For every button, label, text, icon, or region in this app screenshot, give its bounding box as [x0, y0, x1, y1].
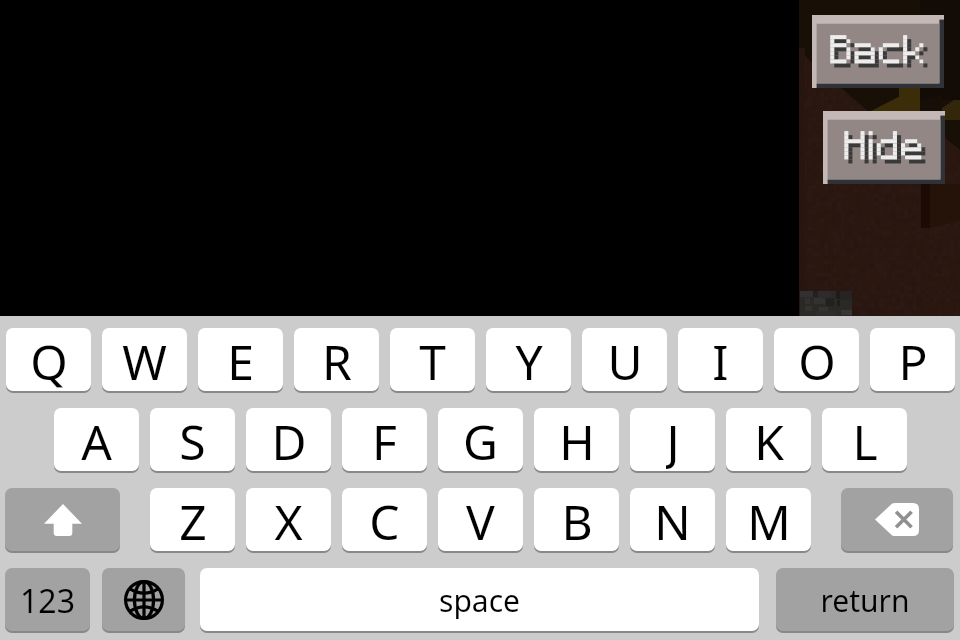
staticText: J	[666, 409, 680, 471]
staticText: P	[898, 329, 928, 391]
staticText: G	[463, 409, 498, 471]
staticText: K	[754, 409, 784, 471]
staticText: Q	[30, 329, 68, 391]
button[interactable]: O	[774, 328, 859, 391]
staticText: Z	[179, 489, 207, 551]
staticText: N	[654, 489, 691, 551]
button[interactable]: H	[534, 408, 619, 471]
button[interactable]: L	[822, 408, 907, 471]
button[interactable]: N	[630, 488, 715, 551]
button[interactable]	[823, 111, 945, 184]
staticText: S	[179, 409, 206, 471]
button[interactable]: I	[678, 328, 763, 391]
staticText: H	[559, 409, 595, 471]
button[interactable]: return	[776, 568, 954, 631]
staticText: space	[439, 580, 520, 621]
button[interactable]: K	[726, 408, 811, 471]
staticText: O	[798, 329, 836, 391]
staticText: W	[122, 329, 167, 391]
button[interactable]: B	[534, 488, 619, 551]
button[interactable]: Shift	[5, 488, 120, 551]
staticText: R	[322, 329, 352, 391]
button[interactable]: S	[150, 408, 235, 471]
button[interactable]: D	[246, 408, 331, 471]
button[interactable]: Backspace	[841, 488, 953, 551]
button[interactable]: C	[342, 488, 427, 551]
button[interactable]: Z	[150, 488, 235, 551]
button[interactable]: F	[342, 408, 427, 471]
staticText: A	[81, 409, 112, 471]
staticText: return	[820, 580, 910, 621]
staticText: C	[369, 489, 400, 551]
staticText: U	[607, 329, 643, 391]
button[interactable]: T	[390, 328, 475, 391]
button[interactable]: G	[438, 408, 523, 471]
button[interactable]: J	[630, 408, 715, 471]
staticText: B	[561, 489, 593, 551]
button[interactable]: 123	[5, 568, 90, 631]
button[interactable]: M	[726, 488, 811, 551]
button[interactable]: P	[870, 328, 955, 391]
button[interactable]: Change keyboard	[102, 568, 185, 631]
button[interactable]: V	[438, 488, 523, 551]
staticText: V	[466, 489, 495, 551]
staticText: X	[274, 489, 303, 551]
button[interactable]: Q	[6, 328, 91, 391]
staticText: Y	[515, 329, 543, 391]
button[interactable]: X	[246, 488, 331, 551]
staticText: 123	[20, 579, 75, 623]
staticText: T	[419, 329, 446, 391]
button[interactable]: W	[102, 328, 187, 391]
staticText: F	[372, 409, 397, 471]
button[interactable]	[812, 15, 944, 88]
button[interactable]: space	[200, 568, 759, 631]
button[interactable]: U	[582, 328, 667, 391]
staticText: D	[271, 409, 307, 471]
button[interactable]: A	[54, 408, 139, 471]
staticText: E	[227, 329, 254, 391]
button[interactable]: R	[294, 328, 379, 391]
staticText: L	[852, 409, 878, 471]
button[interactable]: E	[198, 328, 283, 391]
staticText: M	[747, 489, 791, 551]
staticText: I	[712, 329, 729, 391]
button[interactable]: Y	[486, 328, 571, 391]
